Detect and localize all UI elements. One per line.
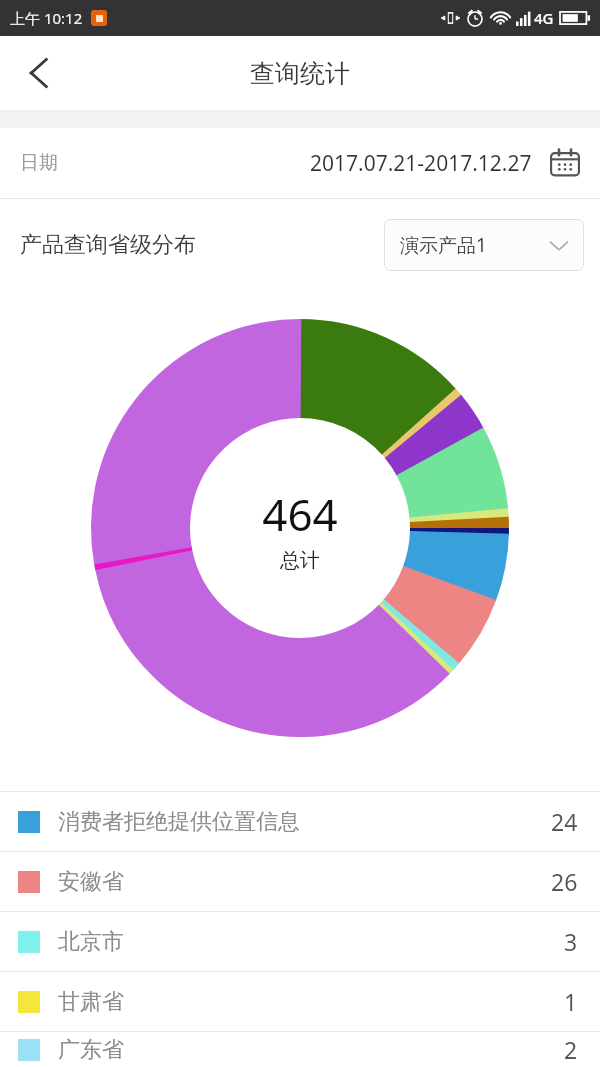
- button[interactable]: 演示产品1: [384, 219, 584, 271]
- staticText: 日期: [20, 151, 58, 175]
- button[interactable]: 安徽省: [0, 852, 600, 911]
- staticText: 产品查询省级分布: [20, 231, 196, 259]
- staticText: 消费者拒绝提供位置信息: [58, 808, 300, 836]
- staticText: 演示产品1: [400, 232, 487, 258]
- staticText: 464: [262, 484, 338, 544]
- other: Pick date: [548, 146, 582, 180]
- button[interactable]: 北京市: [0, 912, 600, 971]
- button[interactable]: Back: [8, 42, 70, 104]
- staticText: 1: [564, 986, 578, 1017]
- button[interactable]: 广东省: [0, 1032, 600, 1067]
- staticText: 广东省: [58, 1036, 124, 1064]
- staticText: 26: [551, 866, 578, 897]
- staticText: 安徽省: [58, 868, 124, 896]
- staticText: 4G: [534, 8, 554, 28]
- staticText: 查询统计: [250, 58, 350, 89]
- staticText: 2: [564, 1034, 578, 1065]
- staticText: 3: [564, 926, 578, 957]
- button[interactable]: 甘肃省: [0, 972, 600, 1031]
- staticText: 24: [551, 806, 578, 837]
- staticText: 2017.07.21-2017.12.27: [310, 149, 532, 178]
- staticText: 上午 10:12: [10, 8, 83, 28]
- button[interactable]: 消费者拒绝提供位置信息: [0, 792, 600, 851]
- staticText: 总计: [280, 548, 320, 573]
- staticText: 北京市: [58, 928, 124, 956]
- staticText: 甘肃省: [58, 988, 124, 1016]
- button[interactable]: 日期: [0, 128, 600, 198]
